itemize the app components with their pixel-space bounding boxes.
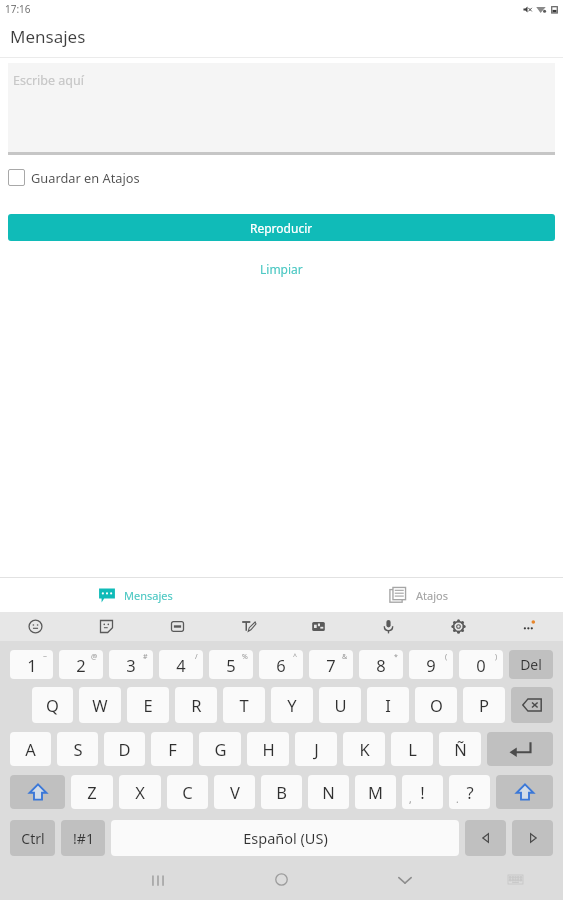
- staticText: M: [368, 781, 383, 803]
- button[interactable]: O: [415, 687, 457, 723]
- button[interactable]: 5: [209, 650, 253, 679]
- button[interactable]: Q: [32, 687, 73, 723]
- button[interactable]: E: [127, 687, 169, 723]
- button[interactable]: Ñ: [439, 732, 481, 766]
- button[interactable]: !: [402, 775, 443, 809]
- staticText: P: [479, 694, 489, 716]
- button[interactable]: Back: [380, 859, 430, 900]
- button[interactable]: V: [214, 775, 255, 809]
- button[interactable]: Ctrl: [10, 820, 55, 856]
- button[interactable]: K: [343, 732, 385, 766]
- staticText: I: [385, 694, 391, 716]
- button[interactable]: I: [367, 687, 409, 723]
- staticText: N: [322, 781, 335, 803]
- button[interactable]: Z: [71, 775, 113, 809]
- button[interactable]: Translate: [213, 612, 283, 641]
- button[interactable]: Settings: [423, 612, 493, 641]
- button[interactable]: GIF: [142, 612, 213, 641]
- button[interactable]: R: [175, 687, 217, 723]
- button[interactable]: A: [10, 732, 51, 766]
- button[interactable]: Mensajes: [0, 578, 281, 612]
- staticText: *: [394, 652, 398, 662]
- button[interactable]: More options: [493, 612, 563, 641]
- button[interactable]: Y: [271, 687, 313, 723]
- staticText: 9: [426, 654, 436, 676]
- staticText: 0: [476, 654, 486, 676]
- button[interactable]: Emoji: [0, 612, 71, 641]
- button[interactable]: 4: [159, 650, 203, 679]
- staticText: Del: [520, 655, 542, 674]
- button[interactable]: G: [199, 732, 241, 766]
- button[interactable]: Image: [283, 612, 353, 641]
- staticText: !: [420, 781, 425, 803]
- button[interactable]: [496, 775, 553, 809]
- staticText: D: [118, 738, 131, 760]
- staticText: Guardar en Atajos: [31, 169, 140, 186]
- staticText: S: [73, 738, 83, 760]
- staticText: V: [230, 781, 240, 803]
- button[interactable]: F: [151, 732, 193, 766]
- button[interactable]: N: [308, 775, 349, 809]
- button[interactable]: [512, 820, 553, 856]
- button[interactable]: Recent apps: [133, 859, 183, 900]
- staticText: Mensajes: [124, 588, 173, 603]
- button[interactable]: D: [104, 732, 145, 766]
- button[interactable]: 9: [409, 650, 453, 679]
- staticText: L: [408, 738, 417, 760]
- button[interactable]: 8: [359, 650, 403, 679]
- button[interactable]: Del: [509, 650, 553, 679]
- staticText: Y: [287, 694, 297, 716]
- button[interactable]: Voice input: [353, 612, 423, 641]
- button[interactable]: [487, 732, 553, 766]
- button[interactable]: !#1: [61, 820, 105, 856]
- button[interactable]: Stickers: [71, 612, 142, 641]
- button[interactable]: 0: [459, 650, 503, 679]
- button[interactable]: P: [463, 687, 505, 723]
- button[interactable]: Reproducir: [8, 214, 555, 241]
- staticText: O: [430, 694, 443, 716]
- button[interactable]: Español (US): [111, 820, 459, 856]
- button[interactable]: 1: [10, 650, 53, 679]
- staticText: 5: [226, 654, 236, 676]
- button[interactable]: M: [355, 775, 396, 809]
- staticText: 17:16: [5, 2, 31, 16]
- staticText: W: [92, 694, 108, 716]
- button[interactable]: H: [247, 732, 289, 766]
- staticText: 4: [176, 654, 186, 676]
- button[interactable]: ?: [449, 775, 490, 809]
- button[interactable]: Hide keyboard: [490, 859, 540, 900]
- button[interactable]: [511, 687, 553, 723]
- button[interactable]: 2: [59, 650, 103, 679]
- staticText: G: [214, 738, 227, 760]
- button[interactable]: 6: [259, 650, 303, 679]
- staticText: K: [359, 738, 370, 760]
- staticText: 1: [27, 654, 37, 676]
- button[interactable]: L: [391, 732, 433, 766]
- staticText: %: [242, 652, 248, 662]
- button[interactable]: S: [57, 732, 98, 766]
- button[interactable]: U: [319, 687, 361, 723]
- button[interactable]: [10, 775, 65, 809]
- staticText: 2: [76, 654, 86, 676]
- staticText: Limpiar: [260, 261, 303, 277]
- button[interactable]: Atajos: [281, 578, 563, 612]
- staticText: ): [495, 652, 498, 662]
- button[interactable]: X: [119, 775, 161, 809]
- button[interactable]: J: [295, 732, 337, 766]
- button[interactable]: [465, 820, 506, 856]
- button[interactable]: C: [167, 775, 208, 809]
- button[interactable]: 7: [309, 650, 353, 679]
- button[interactable]: 3: [109, 650, 153, 679]
- staticText: ~: [43, 652, 48, 662]
- button[interactable]: W: [79, 687, 121, 723]
- staticText: C: [182, 781, 193, 803]
- button[interactable]: Limpiar: [246, 256, 317, 282]
- staticText: R: [191, 694, 202, 716]
- staticText: ?: [466, 781, 474, 803]
- button[interactable]: Home: [256, 859, 306, 900]
- staticText: .: [456, 792, 459, 806]
- button[interactable]: Guardar en Atajos: [8, 167, 563, 188]
- button[interactable]: B: [261, 775, 302, 809]
- button[interactable]: T: [223, 687, 265, 723]
